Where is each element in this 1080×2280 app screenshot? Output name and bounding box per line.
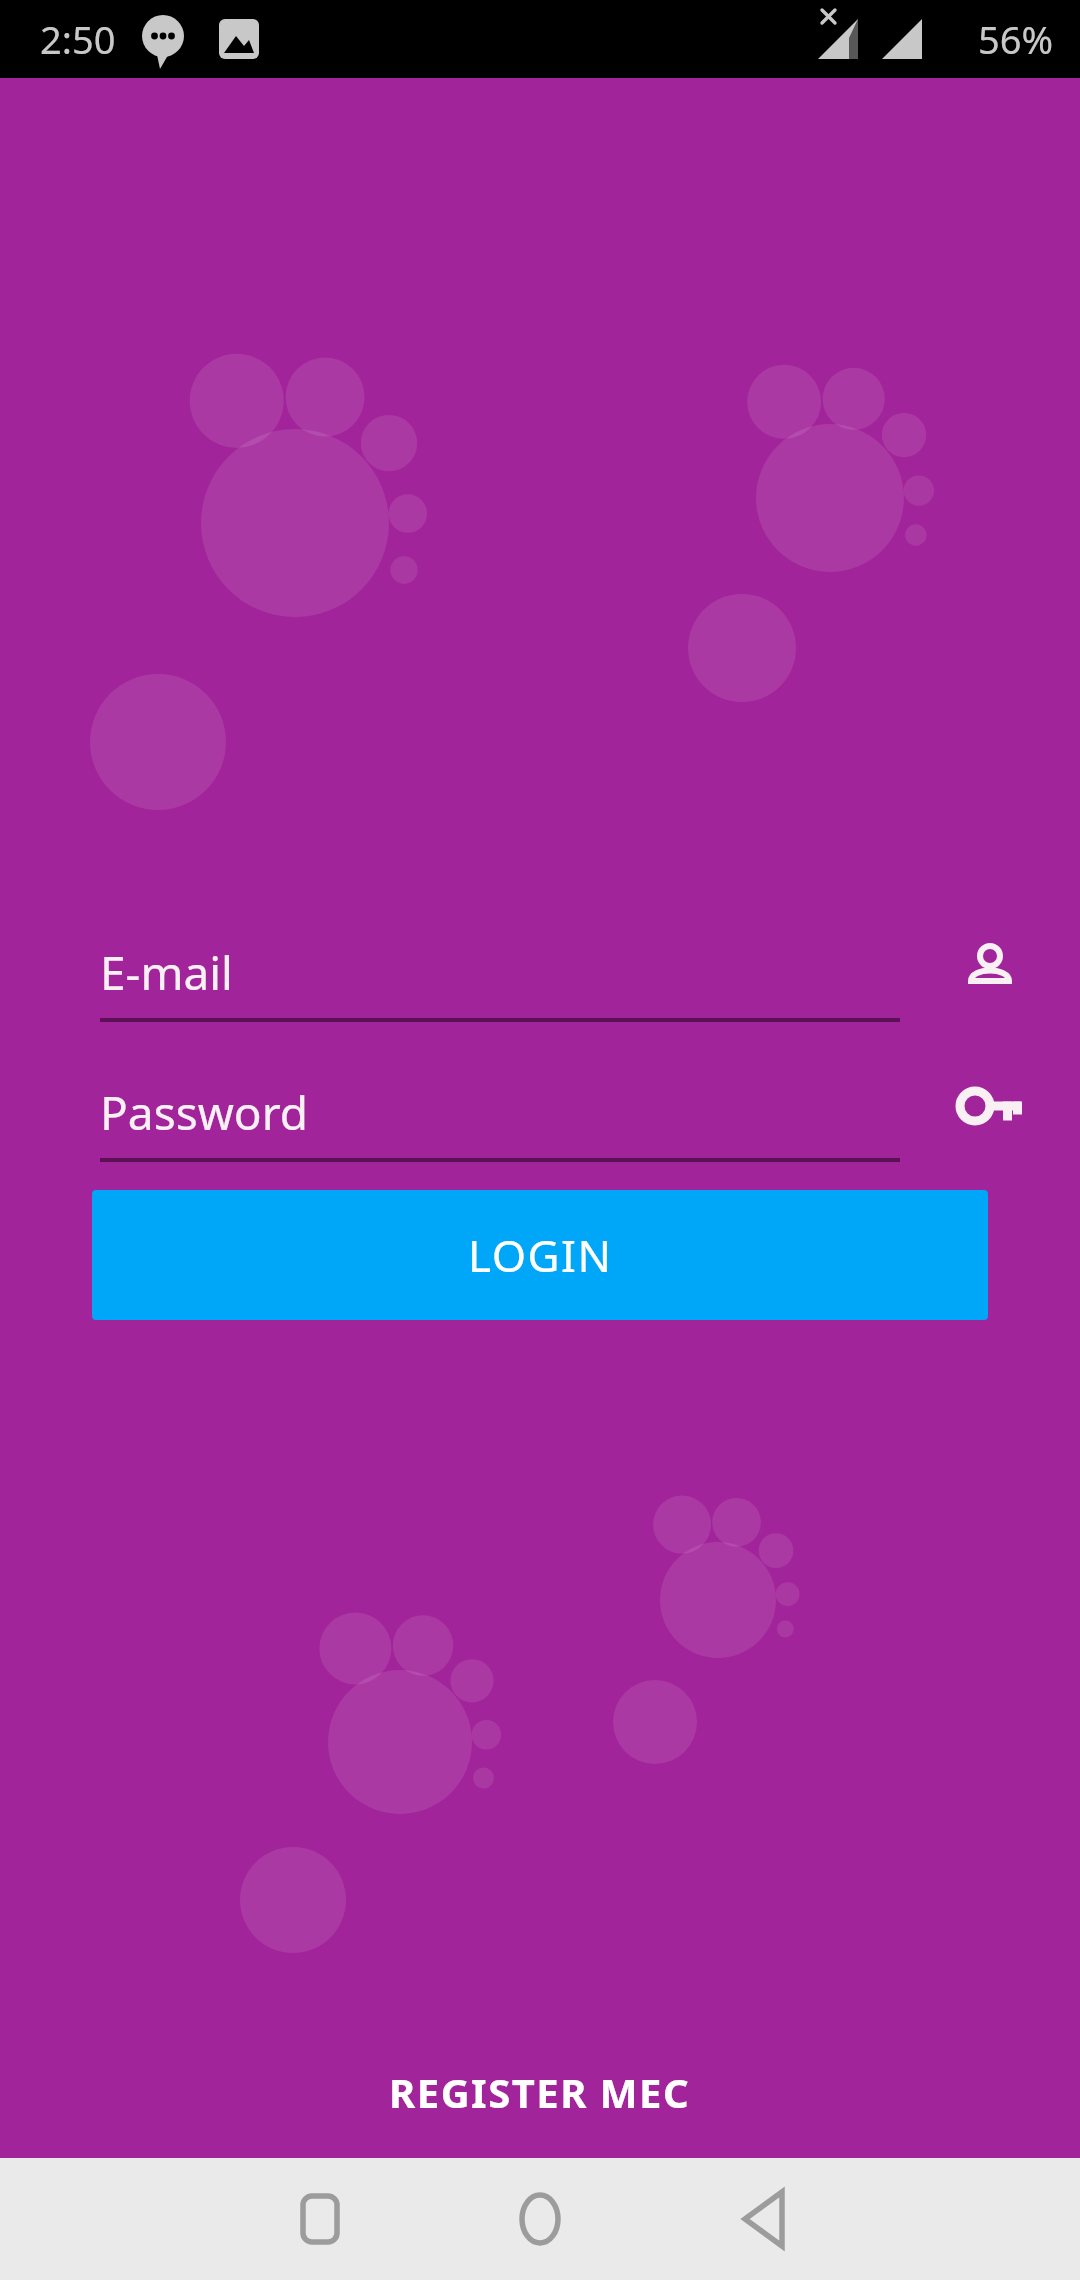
other: Password <box>900 1062 1080 1162</box>
staticText: E-mail <box>100 941 233 1004</box>
button[interactable]: REGISTER MEC <box>0 2052 1080 2132</box>
button[interactable]: Back <box>710 2164 820 2274</box>
staticText: 56% <box>978 13 1054 65</box>
staticText: 2:50 <box>40 13 116 65</box>
button[interactable]: Home <box>485 2164 595 2274</box>
button[interactable]: Password <box>0 1052 1080 1162</box>
button[interactable]: Recents <box>265 2164 375 2274</box>
staticText: LOGIN <box>468 1225 613 1285</box>
other: E-mail <box>900 922 1080 1022</box>
button[interactable]: LOGIN <box>92 1190 988 1320</box>
staticText: Password <box>100 1081 309 1144</box>
staticText: REGISTER MEC <box>389 2065 691 2119</box>
button[interactable]: E-mail <box>0 912 1080 1022</box>
